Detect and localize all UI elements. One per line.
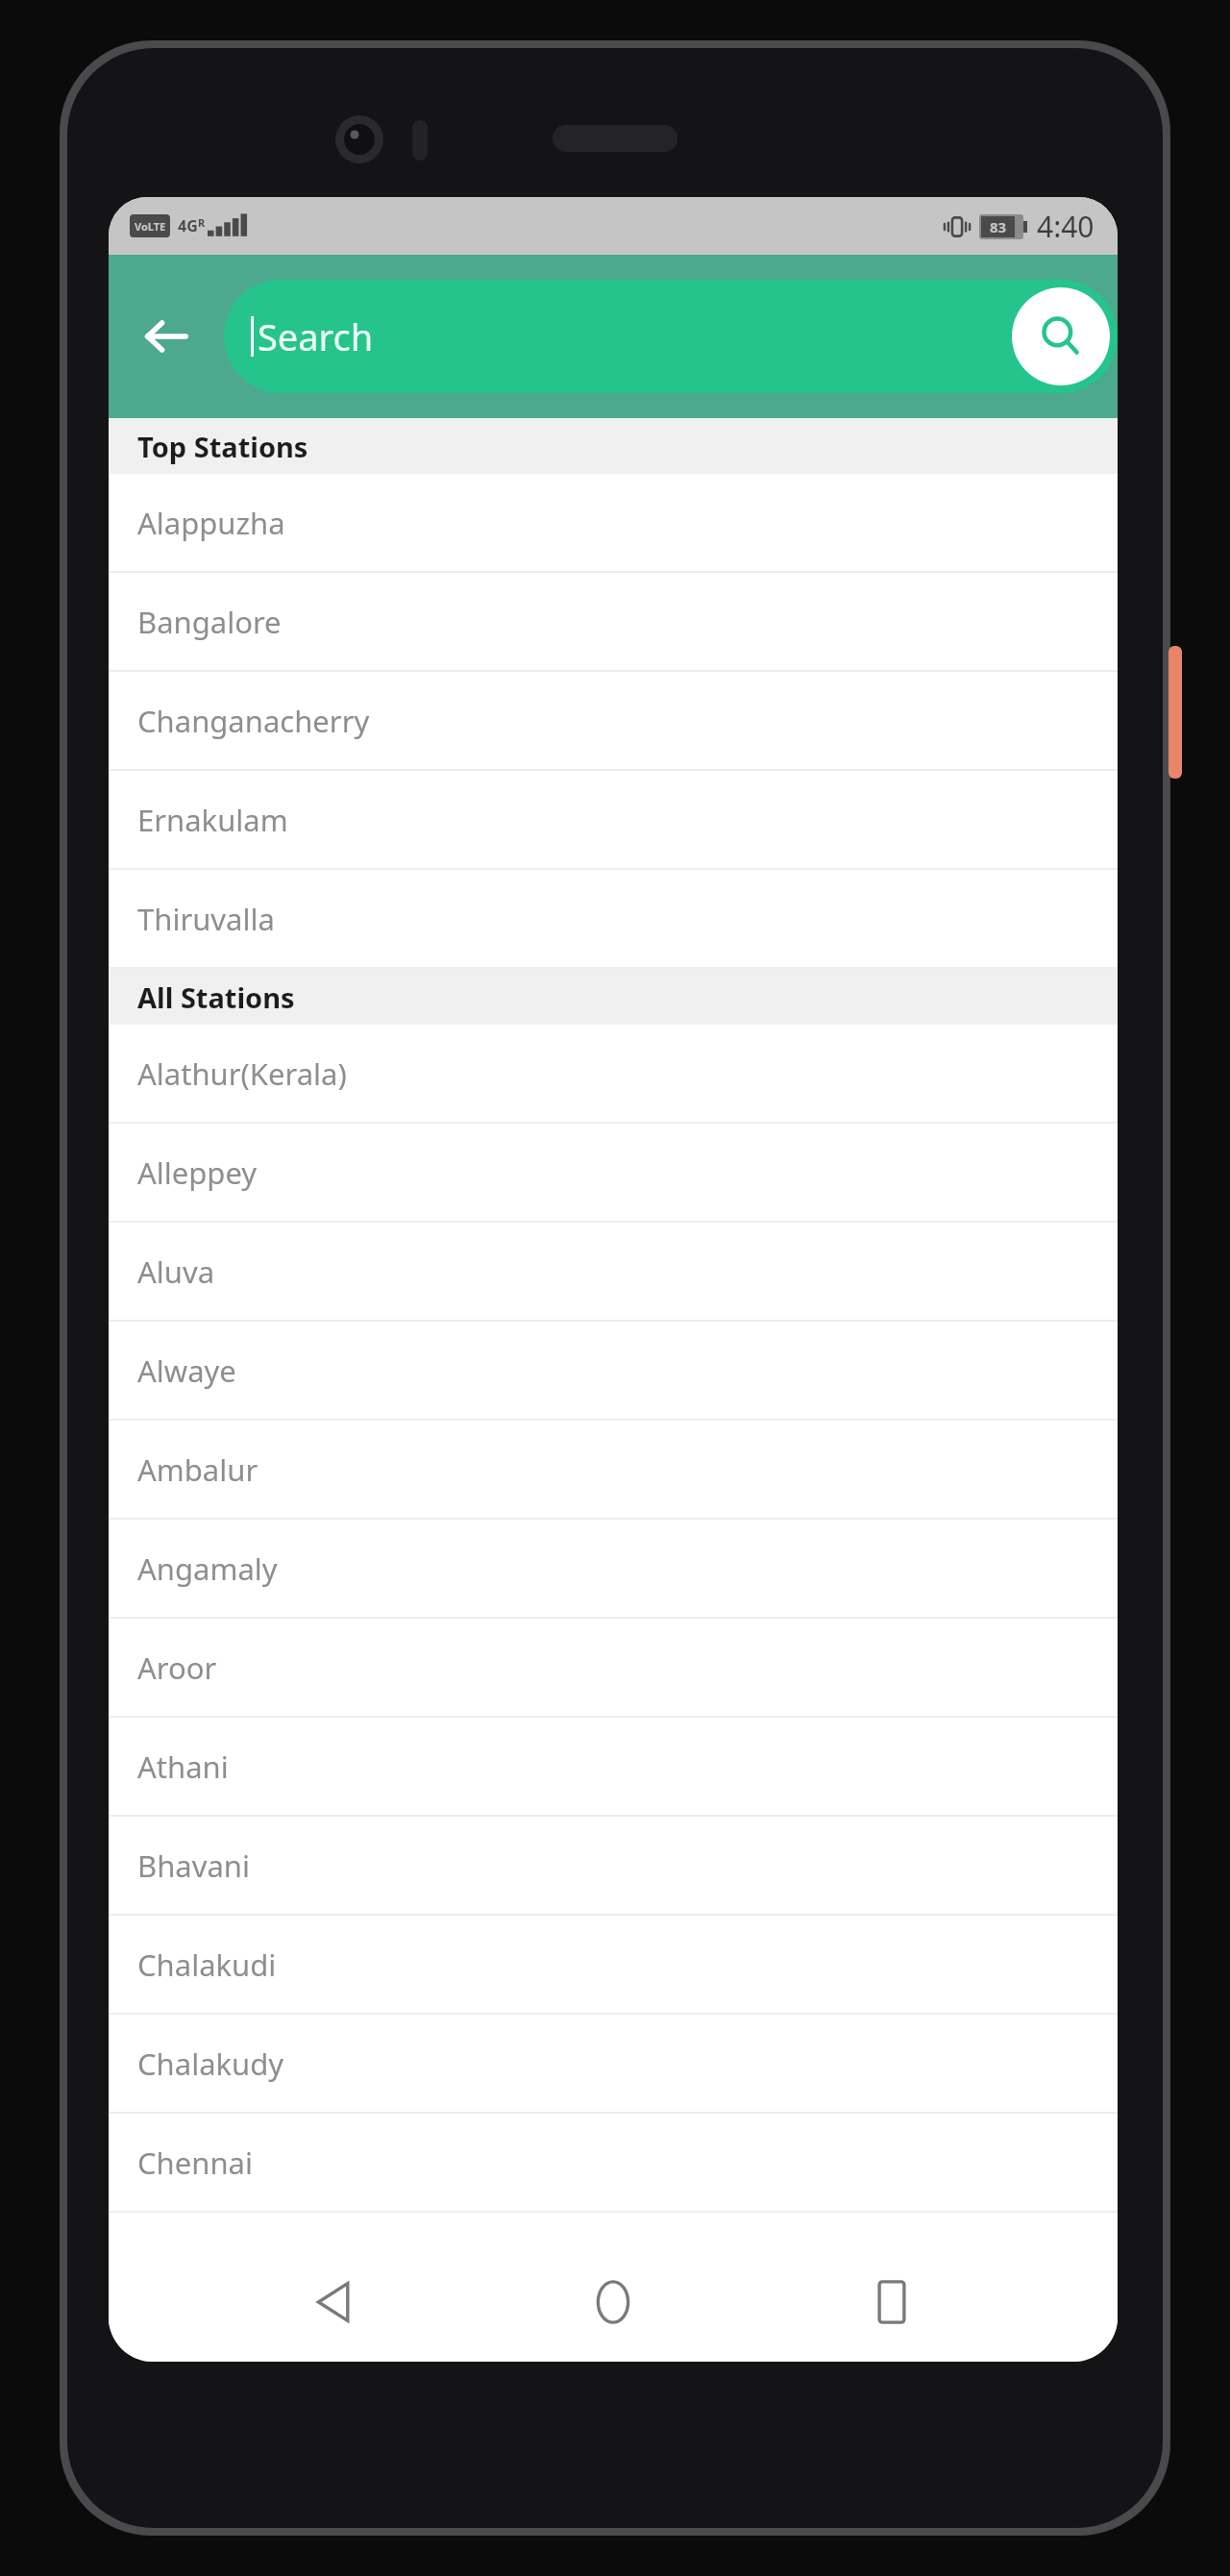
button[interactable]: Aluva [109,1223,1118,1320]
staticText: Top Stations [137,428,308,465]
staticText: Bangalore [137,602,282,642]
staticText: Aroor [137,1647,217,1688]
button[interactable]: Alappuzha [109,474,1118,571]
staticText: Alleppey [137,1152,258,1193]
staticText: Athani [137,1746,229,1787]
staticText: Alappuzha [137,503,285,543]
button[interactable]: Ernakulam [109,771,1118,868]
staticText: 4G [178,215,198,236]
staticText: Chalakudy [137,2043,284,2084]
staticText: Chennai [137,2143,253,2183]
staticText: 4:40 [1037,207,1095,246]
staticText: Alathur(Kerala) [137,1053,347,1094]
button[interactable]: Chalakudy [109,2015,1118,2112]
button[interactable]: Athani [109,1718,1118,1815]
staticText: Alwaye [137,1350,236,1391]
button[interactable]: Top Stations [109,418,1118,474]
staticText: Search [258,311,374,361]
button[interactable]: Back [282,2249,387,2355]
staticText: R [198,215,206,230]
button[interactable]: Alathur(Kerala) [109,1025,1118,1122]
button[interactable]: Home [560,2249,666,2355]
button[interactable]: Chennai [109,2114,1118,2211]
button[interactable]: Angamaly [109,1520,1118,1617]
staticText: Thiruvalla [137,899,275,939]
button[interactable]: Aroor [109,1619,1118,1716]
button[interactable]: Search [1012,287,1110,385]
staticText: Aluva [137,1251,215,1292]
staticText: Angamaly [137,1548,278,1589]
button[interactable]: Alwaye [109,1322,1118,1419]
staticText: 83 [990,217,1007,236]
button[interactable]: Bhavani [109,1817,1118,1914]
button[interactable]: Alleppey [109,1124,1118,1221]
button[interactable]: Chalakudi [109,1916,1118,2013]
button[interactable]: Changanacherry [109,672,1118,769]
staticText: Chalakudi [137,1944,277,1985]
button[interactable]: Back [130,300,203,373]
button[interactable]: Recent apps [839,2249,945,2355]
staticText: VoLTE [135,219,166,234]
button[interactable]: Bangalore [109,573,1118,670]
staticText: Bhavani [137,1845,250,1886]
button[interactable]: All Stations [109,969,1118,1025]
button[interactable]: Thiruvalla [109,870,1118,967]
button[interactable]: Search [224,280,1118,393]
staticText: Ambalur [137,1449,258,1490]
staticText: All Stations [137,978,295,1016]
staticText: Ernakulam [137,800,288,840]
staticText: Changanacherry [137,701,370,741]
button[interactable]: Ambalur [109,1421,1118,1518]
